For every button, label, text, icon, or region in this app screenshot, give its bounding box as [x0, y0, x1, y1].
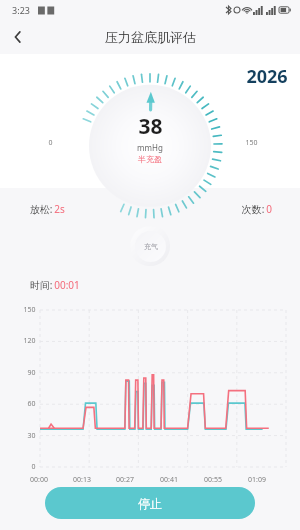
staticText: 00:00 [30, 475, 48, 485]
staticText: mmHg [137, 142, 163, 153]
staticText: 01:09 [248, 475, 266, 485]
staticText: 00:27 [116, 475, 134, 485]
staticText: 00:55 [204, 475, 222, 485]
staticText: 90 [27, 368, 36, 378]
staticText: 压力盆底肌评估 [105, 29, 196, 45]
button[interactable]: 充气 [130, 226, 170, 266]
staticText: 150 [23, 305, 36, 315]
button[interactable]: 停止 [45, 487, 255, 519]
staticText: 放松: [28, 202, 54, 216]
staticText: 半充盈 [138, 154, 162, 164]
staticText: 时间: [28, 278, 54, 292]
staticText: 停止 [138, 496, 162, 511]
staticText: 60 [27, 399, 36, 409]
staticText: 充气 [144, 242, 158, 251]
staticText: 2s [54, 202, 65, 216]
staticText: 0 [48, 138, 53, 148]
staticText: 120 [23, 336, 36, 346]
staticText: 150 [245, 138, 258, 148]
staticText: 2026 [246, 64, 288, 89]
staticText: 00:01 [54, 278, 80, 292]
staticText: 00:13 [73, 475, 91, 485]
staticText: 30 [27, 431, 36, 441]
staticText: 0 [266, 202, 272, 216]
staticText: 3:23 [12, 4, 30, 16]
staticText: 38 [138, 112, 163, 141]
button[interactable]: Back [0, 20, 36, 54]
staticText: 次数: [240, 202, 266, 216]
staticText: 0 [31, 462, 36, 472]
staticText: 00:41 [160, 475, 178, 485]
